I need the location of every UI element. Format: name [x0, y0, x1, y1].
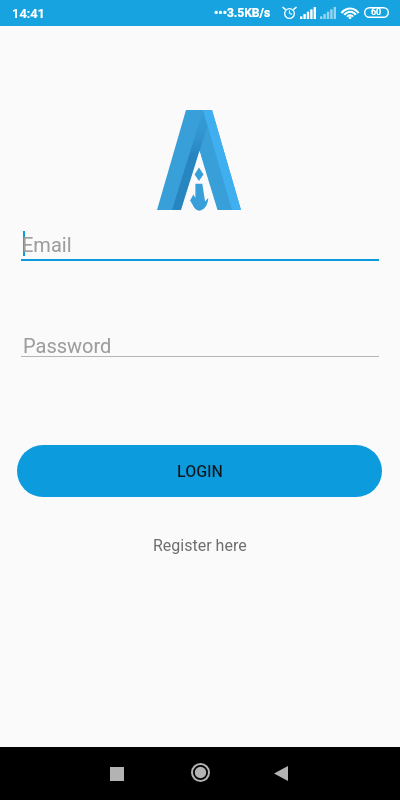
button[interactable]	[21, 322, 379, 358]
button[interactable]: Register here	[141, 528, 259, 563]
button[interactable]: Home	[176, 748, 224, 796]
button[interactable]	[21, 226, 379, 262]
staticText: Register here	[153, 536, 247, 555]
button[interactable]: Back	[257, 749, 305, 797]
staticText: Email	[22, 233, 72, 256]
staticText: •••3.5KB/s	[214, 6, 271, 20]
button[interactable]: LOGIN	[17, 445, 382, 497]
staticText: Password	[23, 334, 112, 357]
staticText: 60	[371, 7, 382, 18]
button[interactable]: Recent apps	[93, 750, 141, 798]
staticText: LOGIN	[177, 462, 223, 481]
staticText: 14:41	[12, 6, 45, 21]
